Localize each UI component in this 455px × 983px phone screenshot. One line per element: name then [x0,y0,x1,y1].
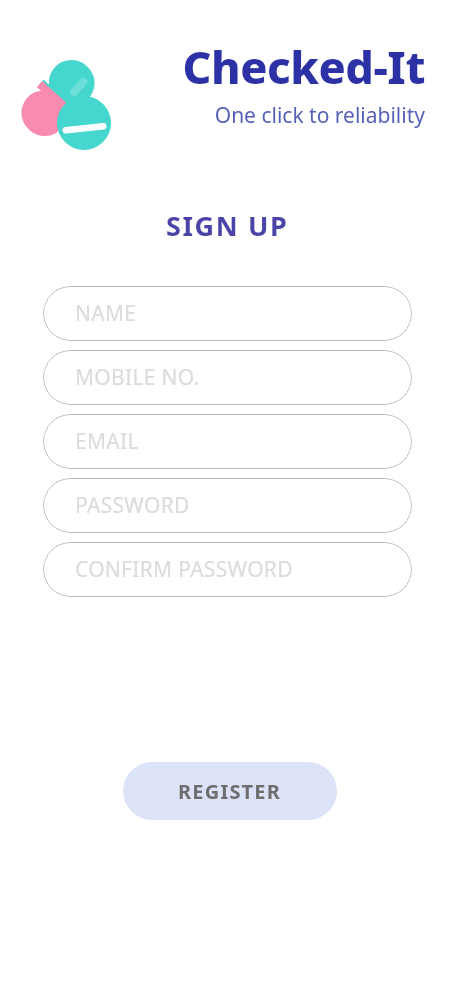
button[interactable]: MOBILE NO. [43,350,412,405]
staticText: SIGN UP [166,207,289,244]
staticText: PASSWORD [75,491,190,520]
button[interactable]: CONFIRM PASSWORD [43,542,412,597]
button[interactable]: REGISTER [123,762,337,820]
staticText: One click to reliability [214,101,425,130]
staticText: EMAIL [75,427,139,456]
staticText: MOBILE NO. [75,363,200,392]
staticText: Checked-It [182,36,425,97]
button[interactable]: PASSWORD [43,478,412,533]
staticText: REGISTER [178,778,282,805]
staticText: CONFIRM PASSWORD [75,555,293,584]
button[interactable]: EMAIL [43,414,412,469]
staticText: NAME [75,299,137,328]
button[interactable]: NAME [43,286,412,341]
